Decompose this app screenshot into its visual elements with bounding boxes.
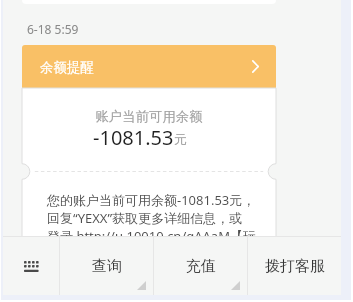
button[interactable]: 充值 xyxy=(154,237,247,295)
staticText: 余额提醒 xyxy=(40,59,94,76)
button[interactable]: 余额提醒 xyxy=(22,45,276,88)
staticText: -1081.53 xyxy=(93,124,174,151)
staticText: 查询 xyxy=(92,257,122,276)
staticText: 6-18 5:59 xyxy=(27,21,79,37)
button[interactable]: Keyboard xyxy=(3,237,59,295)
staticText: 拨打客服 xyxy=(265,257,325,276)
staticText: 您的账户当前可用余额-1081.53元， 回复“YEXX”获取更多详细信息，或 … xyxy=(47,191,256,245)
staticText: 账户当前可用余额 xyxy=(22,108,276,125)
staticText: 充值 xyxy=(186,257,216,276)
other: Open balance detail xyxy=(252,60,259,73)
button[interactable]: 查询 xyxy=(60,237,153,295)
staticText: 元 xyxy=(174,131,187,147)
button[interactable]: 拨打客服 xyxy=(248,237,341,295)
